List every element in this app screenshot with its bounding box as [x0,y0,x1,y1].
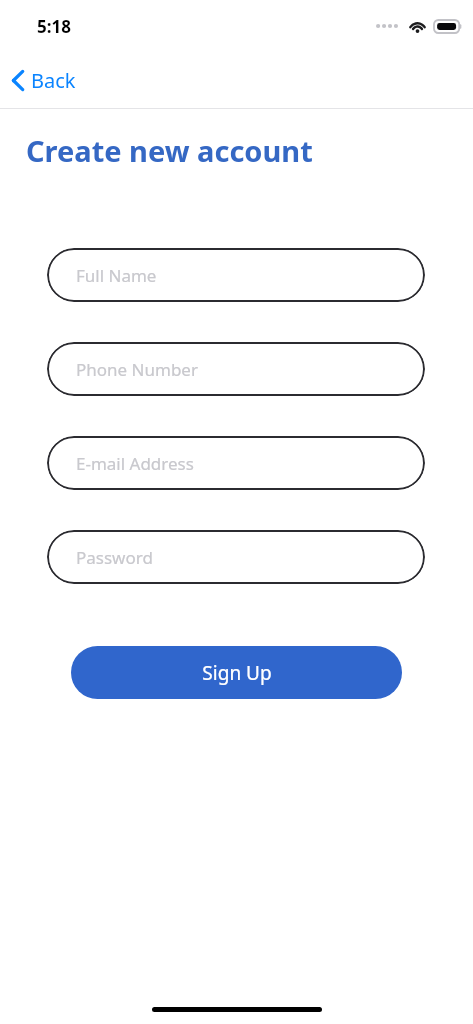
other: Home indicator [152,1007,322,1012]
staticText: Phone Number [76,358,198,381]
staticText: E-mail Address [76,452,194,475]
button[interactable]: Sign Up [71,646,402,699]
button[interactable]: Password [47,530,425,584]
button[interactable]: E-mail Address [47,436,425,490]
button[interactable]: Phone Number [47,342,425,396]
staticText: Password [76,546,153,569]
button[interactable]: Back [0,59,92,102]
staticText: Back [31,67,76,94]
staticText: 5:18 [37,15,71,38]
staticText: Sign Up [202,660,272,686]
staticText: Create new account [26,131,313,170]
button[interactable]: Full Name [47,248,425,302]
staticText: Full Name [76,264,157,287]
